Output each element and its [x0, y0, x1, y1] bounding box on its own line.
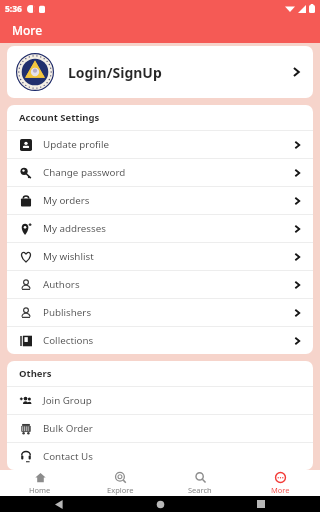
button[interactable]: Change password [7, 159, 313, 186]
button[interactable]: Explore [80, 470, 160, 496]
button[interactable]: Contact Us [7, 443, 313, 470]
staticText: Bulk Order [43, 422, 93, 435]
button[interactable]: Update profile [7, 131, 313, 158]
staticText: Join Group [43, 394, 92, 407]
button[interactable]: Home [0, 470, 80, 496]
staticText: Update profile [43, 138, 110, 151]
staticText: Collections [43, 334, 94, 347]
button[interactable]: Login/SignUp [7, 46, 313, 98]
button[interactable]: My addresses [7, 215, 313, 242]
button[interactable]: My orders [7, 187, 313, 214]
staticText: Authors [43, 278, 80, 291]
staticText: 5:36 [5, 3, 22, 15]
staticText: Explore [107, 485, 134, 495]
button[interactable]: More [240, 470, 320, 496]
staticText: Search [188, 485, 212, 495]
button[interactable]: Publishers [7, 299, 313, 326]
button[interactable]: Collections [7, 327, 313, 354]
button[interactable]: Search [160, 470, 240, 496]
staticText: My addresses [43, 222, 106, 235]
button[interactable]: Join Group [7, 387, 313, 414]
staticText: More [271, 485, 290, 495]
staticText: Others [19, 367, 52, 380]
staticText: Publishers [43, 306, 92, 319]
staticText: My wishlist [43, 250, 94, 263]
staticText: Contact Us [43, 450, 93, 463]
button[interactable]: Bulk Order [7, 415, 313, 442]
button[interactable]: Authors [7, 271, 313, 298]
staticText: Login/SignUp [68, 63, 162, 82]
staticText: Home [29, 485, 51, 495]
button[interactable]: My wishlist [7, 243, 313, 270]
staticText: Change password [43, 166, 126, 179]
staticText: Account Settings [19, 111, 100, 124]
staticText: More [12, 22, 43, 38]
staticText: My orders [43, 194, 90, 207]
